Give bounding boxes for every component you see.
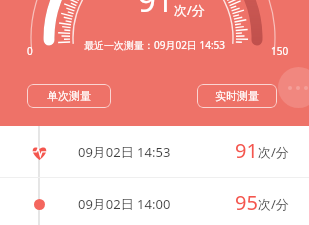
staticText: 91 [138, 0, 174, 21]
staticText: 实时测量 [215, 89, 259, 103]
staticText: 0 [27, 44, 33, 58]
button[interactable]: 实时测量 [197, 84, 277, 108]
button[interactable]: More options [278, 67, 309, 108]
staticText: 最近一次测量：09月02日 14:53 [84, 38, 226, 52]
staticText: 150 [271, 44, 289, 58]
button[interactable]: 单次测量 [27, 84, 111, 108]
staticText: 91 [235, 137, 258, 164]
staticText: 次/分 [258, 143, 289, 161]
button[interactable]: 09月02日 14:53 [0, 126, 309, 178]
staticText: 09月02日 14:53 [78, 143, 171, 161]
staticText: 09月02日 14:00 [78, 195, 171, 213]
staticText: 次/分 [258, 195, 289, 213]
staticText: 95 [235, 189, 258, 216]
staticText: 单次测量 [47, 89, 91, 103]
button[interactable]: 09月02日 14:00 [0, 178, 309, 225]
staticText: 次/分 [174, 1, 205, 19]
